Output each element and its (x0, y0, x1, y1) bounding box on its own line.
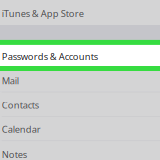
button[interactable]: Calendar (0, 116, 160, 140)
button[interactable]: iTunes & App Store (0, 0, 160, 25)
staticText: Calendar (2, 123, 41, 135)
button[interactable]: Passwords & Accounts (0, 43, 160, 67)
staticText: Notes (2, 148, 27, 160)
button[interactable]: Notes (0, 140, 160, 160)
button[interactable]: Mail (0, 67, 160, 92)
button[interactable]: Contacts (0, 92, 160, 116)
staticText: Mail (2, 74, 19, 87)
staticText: Passwords & Accounts (2, 50, 98, 63)
staticText: Contacts (2, 99, 39, 111)
staticText: iTunes & App Store (2, 7, 84, 20)
